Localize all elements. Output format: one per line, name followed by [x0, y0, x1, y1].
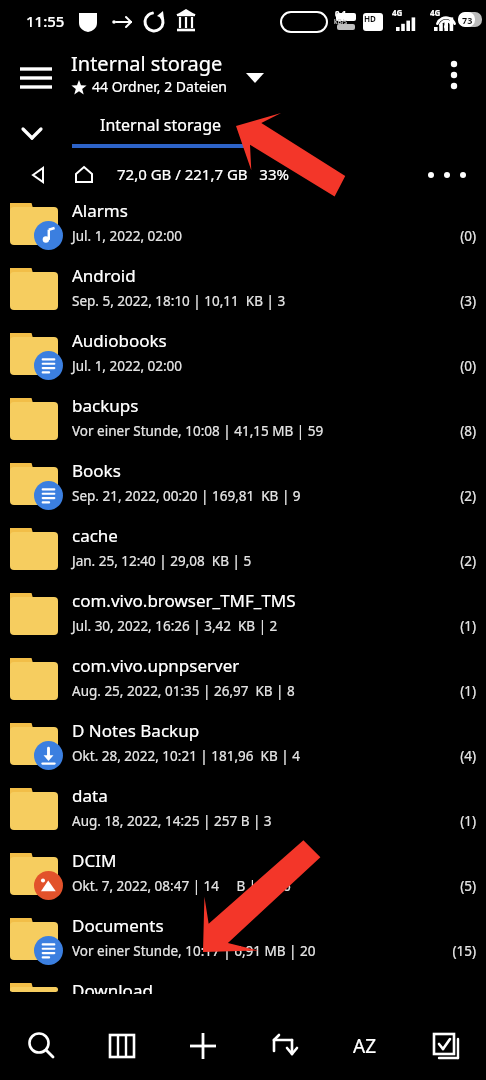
button[interactable]: More options [431, 52, 477, 98]
button[interactable]: data [0, 779, 486, 844]
staticText: Jul. 1, 2022, 02:00 [72, 357, 432, 375]
staticText: Internal storage [100, 114, 222, 136]
staticText: Android [72, 264, 422, 287]
staticText: 11:55 [26, 11, 65, 31]
staticText: Vor einer Stunde, 10:17 | 6,91 MB | 20 [72, 942, 432, 960]
staticText: DCIM [72, 849, 422, 872]
staticText: (0) [404, 357, 476, 375]
staticText: Aug. 18, 2022, 14:25 | 257 B | 3 [72, 812, 432, 830]
staticText: Okt. 7, 2022, 08:47 | 14 B | 2616 [72, 877, 432, 895]
button[interactable]: 72,0 GB / 221,7 GB 33% [117, 164, 289, 184]
staticText: 4G [392, 7, 403, 18]
staticText: Okt. 28, 2022, 10:21 | 181,96 KB | 4 [72, 747, 432, 765]
button[interactable]: Search [0, 1012, 81, 1080]
staticText: Books [72, 459, 422, 482]
button[interactable]: DCIM [0, 844, 486, 909]
button[interactable]: Add [162, 1012, 243, 1080]
staticText: (1) [404, 812, 476, 830]
button[interactable]: com.vivo.browser_TMF_TMS [0, 584, 486, 649]
staticText: Audiobooks [72, 329, 422, 352]
button[interactable]: Documents [0, 909, 486, 974]
staticText: (0) [404, 227, 476, 245]
staticText: (4) [404, 747, 476, 765]
button[interactable]: Back [22, 159, 54, 191]
button[interactable]: Columns [81, 1012, 162, 1080]
staticText: Vor einer Stunde, 10:08 | 41,15 MB | 59 [72, 422, 432, 440]
staticText: com.vivo.upnpserver [72, 654, 422, 677]
staticText: AZ [353, 1033, 377, 1059]
button[interactable]: Internal storage [72, 110, 250, 156]
staticText: 4G [430, 7, 441, 18]
staticText: Sep. 21, 2022, 00:20 | 169,81 KB | 9 [72, 487, 432, 505]
staticText: HD [364, 13, 376, 24]
staticText: Documents [72, 914, 422, 937]
staticText: Alarms [72, 199, 422, 222]
staticText: Jan. 25, 12:40 | 29,08 KB | 5 [72, 552, 432, 570]
staticText: (2) [404, 487, 476, 505]
staticText: Download [72, 979, 422, 994]
button[interactable]: Alarms [0, 194, 486, 259]
staticText: 73 [462, 14, 473, 26]
staticText: (3) [404, 292, 476, 310]
staticText: (1) [404, 617, 476, 635]
staticText: D Notes Backup [72, 719, 422, 742]
button[interactable]: Android [0, 259, 486, 324]
staticText: 44 Ordner, 2 Dateien [92, 77, 228, 96]
button[interactable]: com.vivo.upnpserver [0, 649, 486, 714]
button[interactable]: backups [0, 389, 486, 454]
staticText: Internal storage [71, 50, 223, 77]
button[interactable]: Home [68, 159, 100, 191]
button[interactable]: Path options [424, 160, 474, 190]
staticText: 0,1 [335, 8, 347, 19]
staticText: backups [72, 394, 422, 417]
staticText: com.vivo.browser_TMF_TMS [72, 589, 422, 612]
staticText: Aug. 25, 2022, 01:35 | 26,97 KB | 8 [72, 682, 432, 700]
button[interactable]: Download [0, 974, 486, 989]
staticText: (5) [404, 877, 476, 895]
staticText: kB/s [334, 17, 348, 26]
staticText: (15) [404, 942, 476, 960]
button[interactable]: cache [0, 519, 486, 584]
staticText: (2) [404, 552, 476, 570]
button[interactable]: Menu [10, 52, 62, 104]
staticText: (1) [404, 682, 476, 700]
button[interactable]: Sort [324, 1012, 405, 1080]
button[interactable]: D Notes Backup [0, 714, 486, 779]
button[interactable]: Books [0, 454, 486, 519]
button[interactable]: Audiobooks [0, 324, 486, 389]
staticText: Jul. 1, 2022, 02:00 [72, 227, 432, 245]
staticText: Jul. 30, 2022, 16:26 | 3,42 KB | 2 [72, 617, 432, 635]
button[interactable]: Select [405, 1012, 486, 1080]
staticText: cache [72, 524, 422, 547]
button[interactable]: Transfer [243, 1012, 324, 1080]
staticText: (8) [404, 422, 476, 440]
button[interactable]: Internal storage [71, 50, 228, 96]
button[interactable]: Switch storage [238, 60, 272, 94]
staticText: Sep. 5, 2022, 18:10 | 10,11 KB | 3 [72, 292, 432, 310]
button[interactable]: Collapse [12, 113, 52, 153]
staticText: data [72, 784, 422, 807]
